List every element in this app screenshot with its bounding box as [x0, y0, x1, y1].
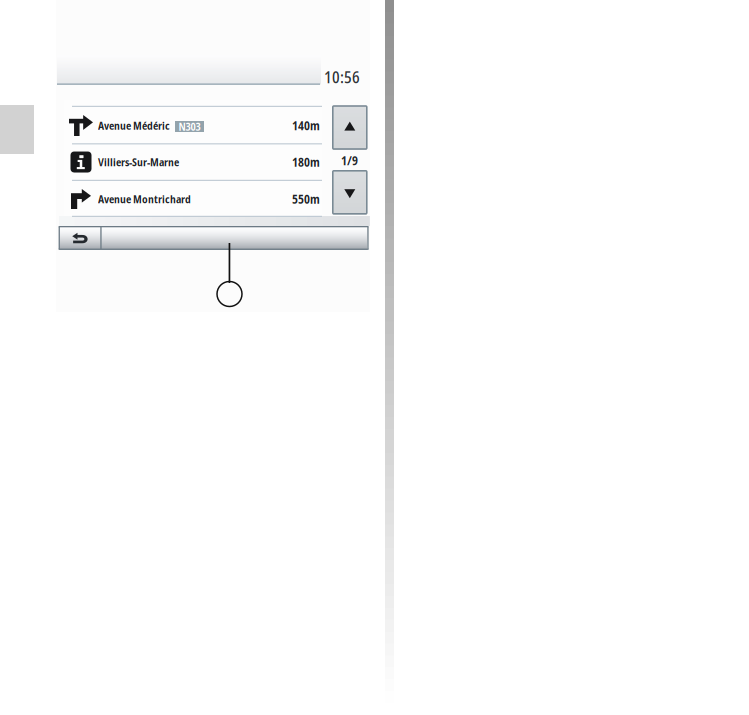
- staticText: Villiers-Sur-Marne: [98, 155, 179, 169]
- button[interactable]: Back: [59, 227, 100, 249]
- staticText: 550m: [292, 191, 320, 207]
- staticText: 1/9: [341, 152, 358, 169]
- staticText: 180m: [292, 154, 320, 170]
- staticText: Avenue Médéric: [98, 118, 170, 133]
- staticText: N303: [178, 119, 200, 134]
- button[interactable]: Next step: [333, 171, 367, 214]
- staticText: 140m: [292, 117, 320, 134]
- staticText: 10:56: [324, 66, 360, 88]
- staticText: Avenue Montrichard: [98, 192, 191, 206]
- button[interactable]: Villiers-Sur-Marne: [64, 144, 320, 180]
- button[interactable]: Avenue Montrichard: [64, 181, 320, 217]
- button[interactable]: Previous step: [333, 106, 367, 149]
- button[interactable]: Avenue Médéric: [64, 107, 320, 144]
